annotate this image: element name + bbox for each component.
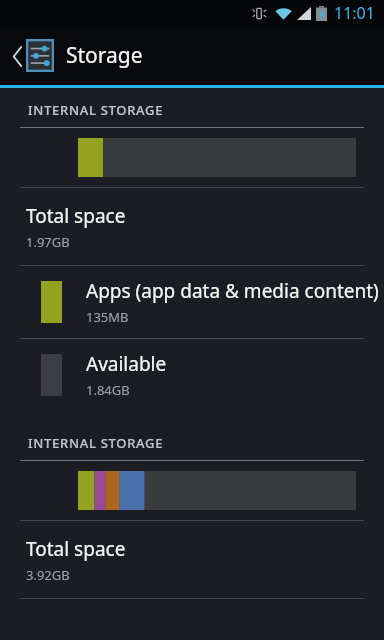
staticText: Storage (66, 41, 143, 70)
staticText: INTERNAL STORAGE (28, 434, 164, 452)
staticText: 11:01 (334, 2, 375, 24)
staticText: Available (86, 351, 167, 377)
button[interactable]: Available (0, 339, 384, 411)
other: Back (9, 39, 26, 73)
button[interactable]: Total space (0, 521, 384, 598)
staticText: 3.92GB (26, 566, 70, 584)
staticText: 1.84GB (86, 381, 130, 399)
button[interactable] (78, 471, 356, 510)
button[interactable]: Apps (app data & media content) (0, 266, 384, 338)
staticText: INTERNAL STORAGE (28, 101, 164, 119)
button[interactable]: Total space (0, 188, 384, 265)
button[interactable] (78, 138, 356, 177)
staticText: 135MB (86, 308, 129, 326)
staticText: Total space (26, 203, 126, 229)
staticText: Total space (26, 536, 126, 562)
button[interactable]: Back (0, 26, 384, 85)
staticText: 1.97GB (26, 233, 70, 251)
staticText: Apps (app data & media content) (86, 278, 379, 304)
